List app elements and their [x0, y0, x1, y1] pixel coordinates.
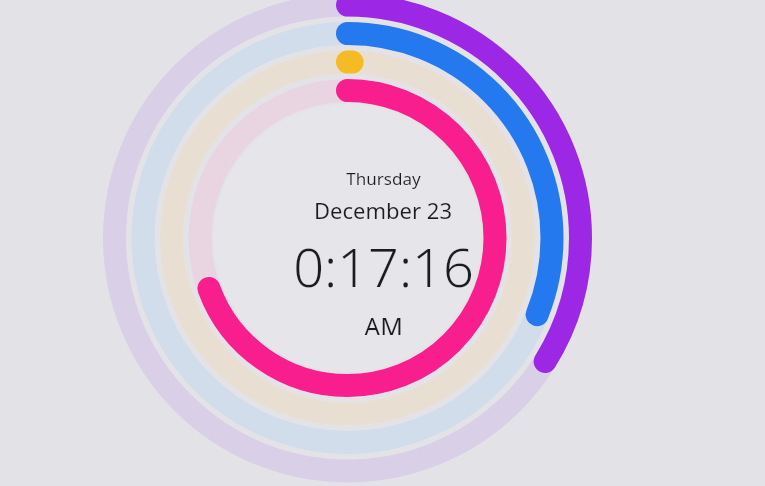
staticText: 0:17:16 [293, 229, 474, 303]
button[interactable]: Thursday [268, 145, 498, 335]
staticText: AM [364, 309, 403, 335]
staticText: December 23 [314, 195, 452, 225]
button[interactable]: Activity rings [0, 0, 765, 486]
staticText: Thursday [346, 167, 421, 190]
